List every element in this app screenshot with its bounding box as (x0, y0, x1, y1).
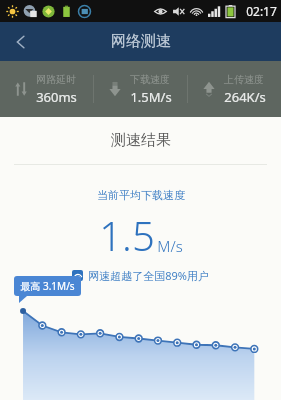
staticText: 网络测速 (111, 32, 171, 51)
button[interactable]: 最高 3.1M/s (14, 276, 81, 296)
button[interactable]: 网路延时 (0, 61, 93, 117)
staticText: M/s (157, 236, 183, 256)
button[interactable]: 上传速度 (188, 61, 281, 117)
button[interactable]: 下载速度 (94, 61, 187, 117)
staticText: 1.5 (99, 208, 155, 262)
staticText: 网路延时 (36, 73, 76, 86)
staticText: 360ms (36, 88, 77, 106)
staticText: 最高 3.1M/s (20, 279, 75, 293)
staticText: 264K/s (224, 88, 266, 106)
staticText: 02:17 (246, 3, 277, 19)
button[interactable]: Back (0, 22, 42, 61)
staticText: 上传速度 (224, 73, 264, 86)
staticText: 下载速度 (130, 73, 170, 86)
staticText: 1.5M/s (130, 88, 172, 106)
staticText: 当前平均下载速度 (97, 188, 185, 202)
staticText: 网速超越了全国89%用户 (88, 268, 209, 283)
staticText: 测速结果 (111, 131, 171, 150)
